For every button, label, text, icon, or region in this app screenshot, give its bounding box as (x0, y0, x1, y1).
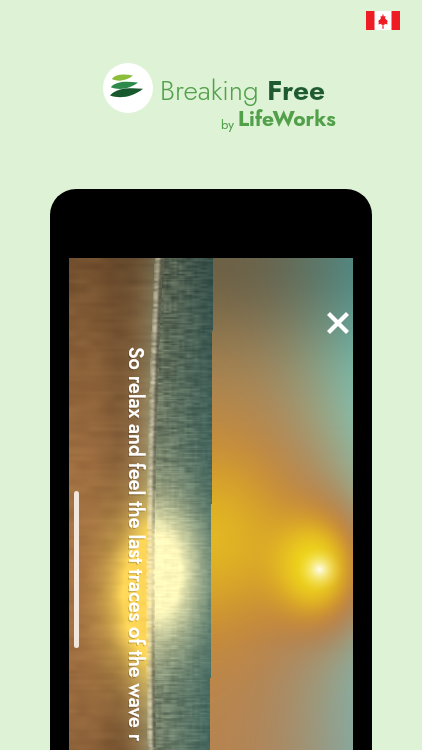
button[interactable]: Close (321, 306, 355, 340)
staticText: Breaking (160, 70, 267, 110)
staticText: by (221, 115, 238, 134)
staticText: Free (267, 70, 326, 110)
staticText: LifeWorks (238, 104, 336, 134)
